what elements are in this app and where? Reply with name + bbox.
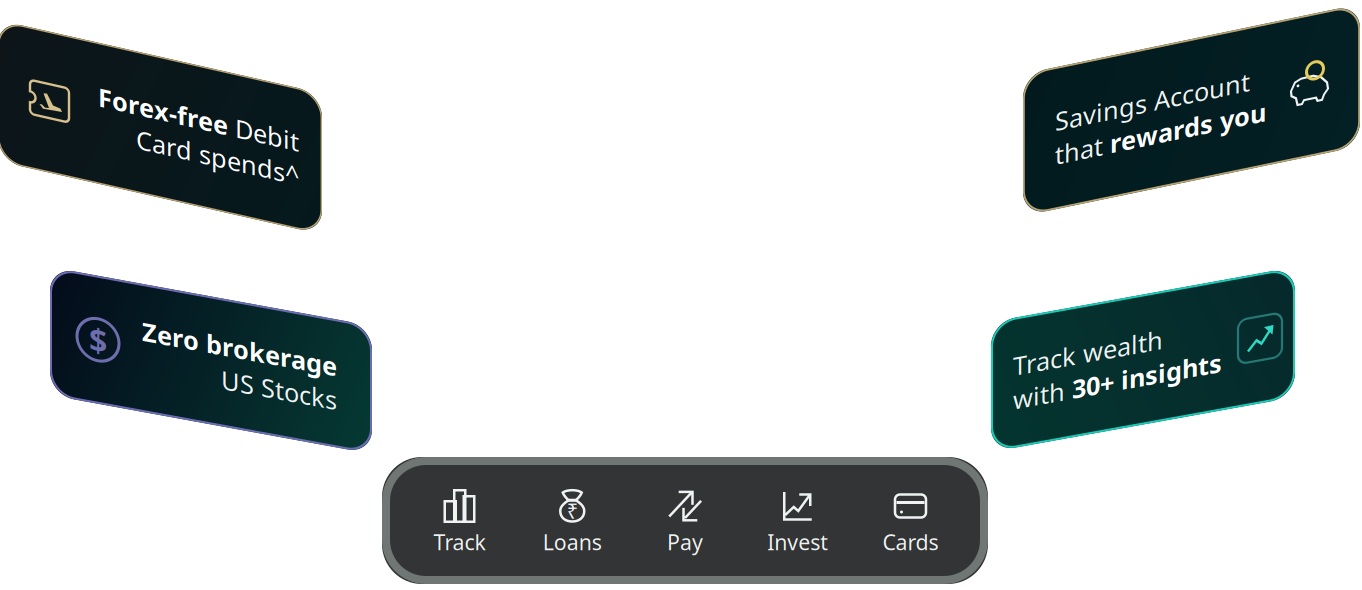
staticText: Zero brokerage: [142, 297, 337, 331]
staticText: rewards you: [1110, 145, 1266, 179]
staticText: Debit: [235, 57, 299, 90]
button[interactable]: Track wealth: [991, 322, 1295, 452]
staticText: Pay: [667, 528, 703, 556]
staticText: Forex-free: [98, 57, 235, 90]
staticText: Track: [433, 528, 485, 556]
button[interactable]: Invest: [741, 457, 854, 584]
button[interactable]: Pay: [629, 457, 741, 584]
staticText: US Stocks: [221, 331, 337, 365]
button[interactable]: ₹: [516, 457, 629, 584]
staticText: that: [1055, 145, 1110, 179]
staticText: Card spends^: [136, 90, 299, 124]
button[interactable]: Track: [403, 457, 516, 584]
staticText: Track wealth: [1013, 353, 1163, 387]
staticText: Invest: [767, 528, 828, 556]
staticText: $: [89, 310, 107, 352]
button[interactable]: Forex-free: [0, 20, 322, 161]
button[interactable]: $: [50, 267, 372, 395]
staticText: Savings Account: [1055, 111, 1250, 145]
staticText: 30+ insights: [1072, 387, 1222, 421]
staticText: Loans: [543, 528, 602, 556]
button[interactable]: Cards: [854, 457, 967, 584]
staticText: Cards: [882, 528, 938, 556]
staticText: with: [1013, 387, 1072, 421]
staticText: ₹: [567, 498, 578, 524]
button[interactable]: Savings Account: [1023, 74, 1360, 216]
